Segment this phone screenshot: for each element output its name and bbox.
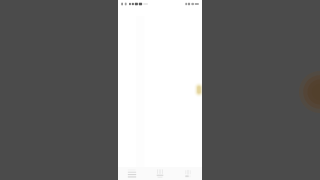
button[interactable]: Profile [174,167,202,180]
button[interactable]: Compose [194,82,204,97]
button[interactable]: Discover [146,167,174,180]
button[interactable]: List [118,167,146,180]
